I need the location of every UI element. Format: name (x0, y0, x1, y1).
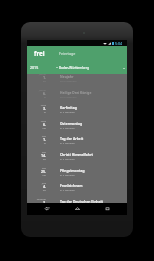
button[interactable]: Mai (27, 152, 127, 168)
button[interactable]: Mai (27, 136, 127, 152)
button[interactable]: Januar (27, 74, 127, 90)
button[interactable]: Feiertage (59, 51, 76, 56)
staticText: Do (27, 188, 46, 191)
staticText: Karfreitag (60, 105, 77, 109)
button[interactable]: Juni (27, 183, 127, 199)
staticText: Tag der Deutschen Einheit (60, 199, 103, 203)
button[interactable]: frei (34, 49, 45, 57)
staticText: Fr (27, 141, 46, 144)
staticText: Ostermontag (60, 121, 83, 125)
staticText: Fronleichnam (60, 183, 83, 187)
staticText: Mai (27, 134, 46, 137)
staticText: 2015 (30, 65, 39, 70)
staticText: Feiertage (59, 51, 76, 56)
staticText: April (27, 103, 46, 106)
staticText: Januar (27, 88, 46, 91)
staticText: 6. (27, 91, 46, 96)
button[interactable]: Baden-Württemberg (59, 66, 125, 70)
staticText: Baden-Württemberg (59, 66, 90, 70)
staticText: in 3 Monaten (60, 157, 75, 160)
staticText: 4. (27, 184, 46, 189)
staticText: Tag der Arbeit (60, 136, 84, 140)
staticText: Pfingstmontag (60, 168, 85, 172)
staticText: 25. (27, 169, 46, 174)
staticText: Do (27, 157, 46, 160)
staticText: 1. (27, 137, 46, 142)
staticText: in 3 Monaten (60, 141, 75, 144)
staticText: Christi Himmelfahrt (60, 152, 93, 156)
staticText: Neujahr (60, 74, 74, 78)
staticText: in 2 Monaten (60, 110, 75, 113)
staticText: Heilige Drei Könige (60, 90, 92, 94)
staticText: Oktober (27, 197, 46, 200)
staticText: in 4 Monaten (60, 188, 75, 191)
staticText: 14. (27, 153, 46, 158)
staticText: 3. (27, 106, 46, 111)
button[interactable]: April (27, 121, 127, 137)
button[interactable]: Oktober (27, 199, 127, 203)
button[interactable]: Home (67, 203, 87, 215)
button[interactable]: Januar (27, 90, 127, 106)
staticText: vor 5 Monaten (60, 95, 77, 98)
staticText: Mo (27, 126, 46, 129)
staticText: 1. (27, 75, 46, 80)
staticText: frei (34, 49, 45, 57)
staticText: Fr (27, 110, 46, 113)
button[interactable]: 2015 (30, 65, 58, 70)
staticText: in 3 Monaten (60, 173, 75, 176)
button[interactable]: Mai (27, 168, 127, 184)
staticText: Juni (27, 181, 46, 184)
staticText: Januar (27, 74, 46, 75)
staticText: 6. (27, 122, 46, 127)
button[interactable]: Back (37, 203, 57, 215)
staticText: Mai (27, 166, 46, 169)
staticText: 5:04 (115, 41, 123, 46)
button[interactable]: Recent apps (97, 203, 117, 215)
staticText: 3. (27, 200, 46, 203)
staticText: Mai (27, 150, 46, 153)
button[interactable]: April (27, 105, 127, 121)
staticText: April (27, 119, 46, 122)
staticText: Mo (27, 173, 46, 176)
staticText: vor 5 Monaten (60, 79, 77, 82)
staticText: in 2 Monaten (60, 126, 75, 129)
